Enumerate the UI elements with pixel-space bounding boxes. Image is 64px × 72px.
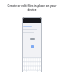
staticText: Create or edit files in-place on your de…	[7, 4, 57, 12]
